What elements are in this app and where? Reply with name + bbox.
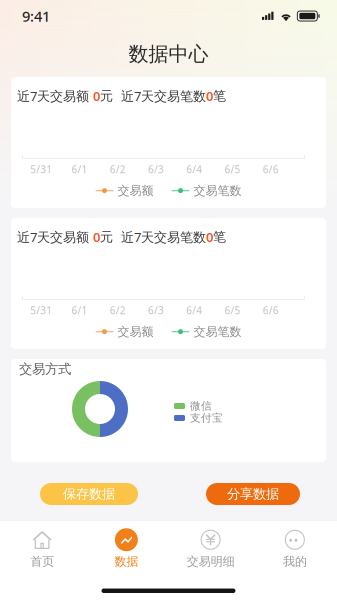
staticText: 6/1 [71,304,87,317]
staticText: 笔 [213,229,226,245]
staticText: 6/3 [148,304,164,317]
staticText: 0 [93,228,100,246]
staticText: 6/1 [71,163,87,176]
staticText: 交易额 [117,183,153,198]
staticText: 我的 [283,554,307,569]
staticText: 首页 [30,554,54,569]
staticText: 数据中心 [128,42,208,66]
button[interactable]: 首页 [0,526,84,572]
staticText: 0 [206,228,213,246]
staticText: 5/31 [30,163,52,176]
staticText: 交易笔数 [193,183,241,198]
staticText: 6/6 [263,304,279,317]
button[interactable]: 保存数据 [40,483,138,505]
staticText: 5/31 [30,304,52,317]
staticText: 6/5 [225,304,241,317]
staticText: 分享数据 [227,486,279,502]
staticText: 9:41 [22,6,50,26]
staticText: 支付宝 [190,411,223,424]
button[interactable]: 交易明细 [168,526,253,572]
staticText: 数据 [114,554,138,569]
staticText: 6/4 [186,163,202,176]
staticText: 6/2 [110,304,126,317]
staticText: 0 [93,87,100,105]
staticText: 6/6 [263,163,279,176]
staticText: 6/5 [225,163,241,176]
staticText: 笔 [213,88,226,104]
button[interactable]: 我的 [253,526,337,572]
staticText: 交易额 [117,324,153,339]
staticText: 近7天交易额 [17,228,93,246]
staticText: 6/3 [148,163,164,176]
button[interactable]: 数据 [84,526,168,572]
staticText: 交易明细 [187,554,235,569]
staticText: 近7天交易笔数 [113,228,206,246]
staticText: 元 [100,229,113,245]
staticText: 0 [206,87,213,105]
staticText: 微信 [190,399,212,412]
staticText: 近7天交易笔数 [113,87,206,105]
staticText: 保存数据 [63,486,115,502]
staticText: 元 [100,88,113,104]
staticText: 近7天交易额 [17,87,93,105]
staticText: 交易笔数 [193,324,241,339]
button[interactable]: 分享数据 [206,483,300,505]
staticText: 6/2 [110,163,126,176]
staticText: 交易方式 [19,361,71,377]
staticText: 6/4 [186,304,202,317]
